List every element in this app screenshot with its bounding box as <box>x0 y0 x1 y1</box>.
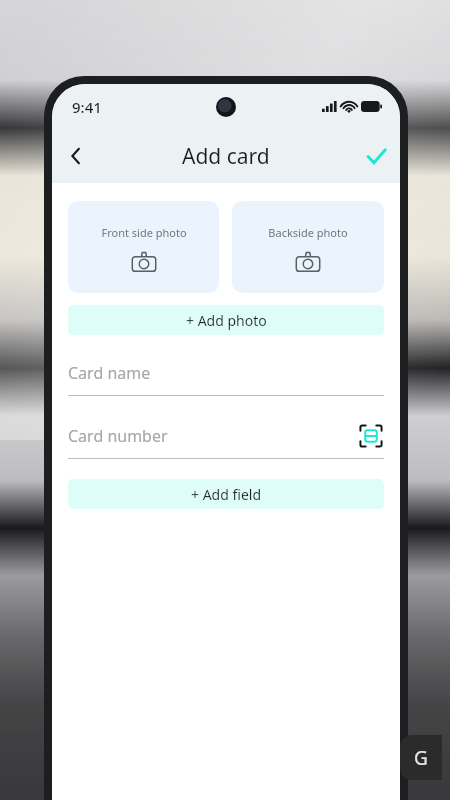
button[interactable]: Scan card <box>358 423 384 449</box>
button[interactable]: + Add field <box>68 479 384 509</box>
button[interactable]: Backside photo <box>232 201 384 293</box>
staticText: Front side photo <box>101 225 187 240</box>
button[interactable]: Front side photo <box>68 201 219 293</box>
button[interactable]: Card number <box>68 422 384 459</box>
button[interactable]: Save <box>352 132 400 180</box>
button[interactable]: Assistant <box>400 735 442 780</box>
staticText: G <box>414 745 428 771</box>
button[interactable]: Back <box>52 132 100 180</box>
button[interactable]: Card name <box>68 359 384 396</box>
button[interactable]: + Add photo <box>68 305 384 335</box>
staticText: Card name <box>68 362 384 384</box>
staticText: 9:41 <box>72 97 102 117</box>
staticText: + Add field <box>191 485 261 504</box>
staticText: Backside photo <box>268 225 348 240</box>
staticText: Card number <box>68 425 358 447</box>
staticText: + Add photo <box>186 311 267 330</box>
staticText: Add card <box>182 142 270 171</box>
